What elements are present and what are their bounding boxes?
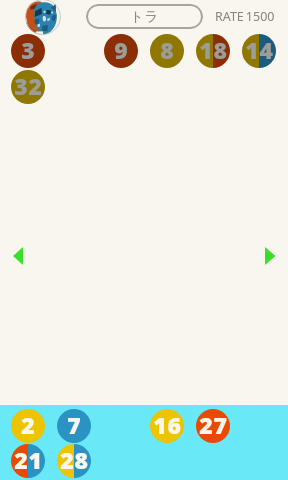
staticText: 27: [199, 409, 228, 440]
button[interactable]: Previous: [4, 238, 34, 274]
button[interactable]: 3: [11, 34, 45, 68]
staticText: RATE 1500: [215, 8, 275, 25]
button[interactable]: Next: [254, 238, 284, 274]
staticText: 7: [67, 409, 82, 440]
button[interactable]: 28: [57, 444, 91, 478]
button[interactable]: 8: [150, 34, 184, 68]
staticText: 16: [153, 409, 182, 440]
staticText: トラ: [130, 8, 160, 25]
button[interactable]: Profile: [25, 0, 61, 35]
button[interactable]: 2: [11, 409, 45, 443]
button[interactable]: RATE 1500: [209, 4, 281, 28]
button[interactable]: 32: [11, 70, 45, 104]
staticText: 9: [114, 34, 129, 65]
button[interactable]: 21: [11, 444, 45, 478]
staticText: 21: [14, 444, 43, 475]
button[interactable]: 27: [196, 409, 230, 443]
button[interactable]: 9: [104, 34, 138, 68]
staticText: 28: [60, 444, 89, 475]
staticText: 18: [199, 34, 228, 65]
button[interactable]: 14: [242, 34, 276, 68]
staticText: 2: [21, 409, 36, 440]
button[interactable]: 7: [57, 409, 91, 443]
staticText: 3: [21, 34, 36, 65]
staticText: 14: [245, 34, 274, 65]
staticText: 32: [14, 70, 43, 101]
button[interactable]: 16: [150, 409, 184, 443]
button[interactable]: 18: [196, 34, 230, 68]
staticText: 8: [160, 34, 175, 65]
button[interactable]: トラ: [86, 4, 203, 29]
